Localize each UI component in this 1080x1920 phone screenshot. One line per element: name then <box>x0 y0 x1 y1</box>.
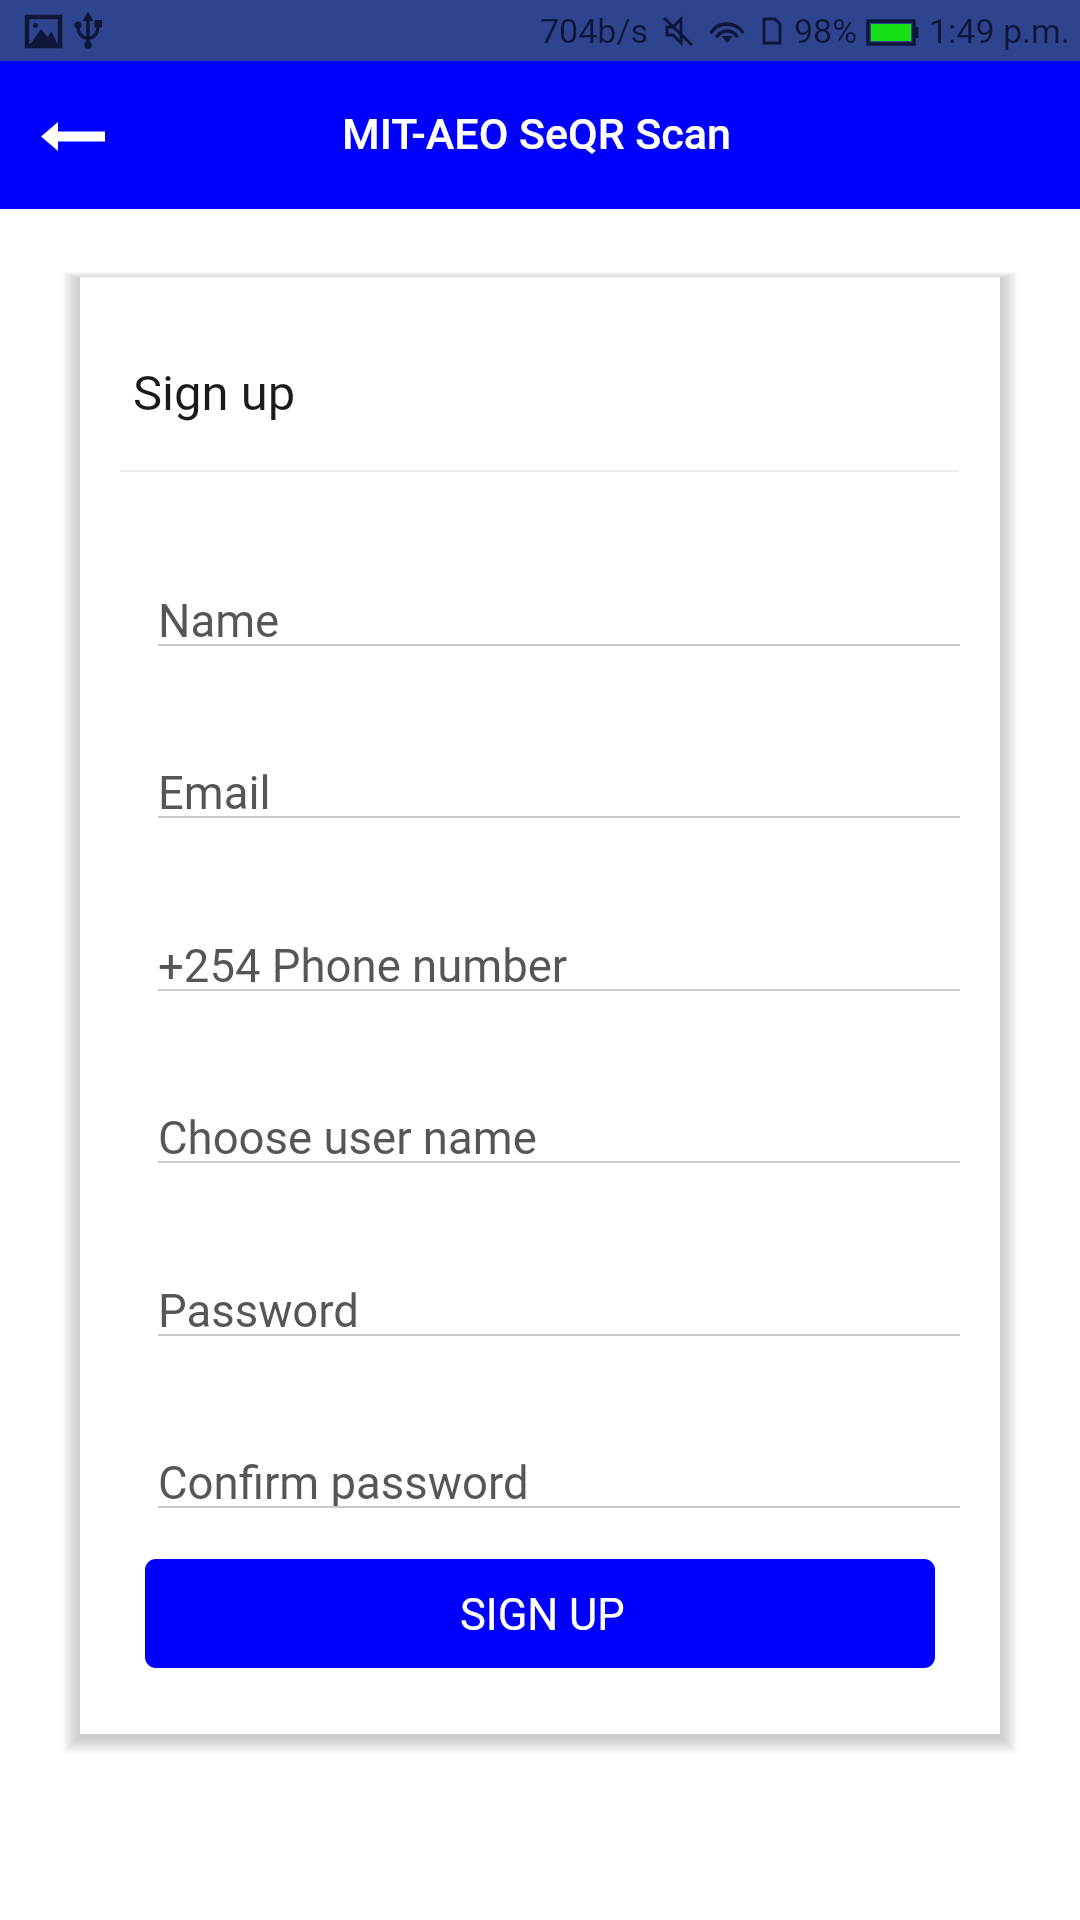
button[interactable]: Email <box>158 730 960 818</box>
staticText: 704b/s <box>540 11 648 51</box>
button[interactable]: Choose user name <box>158 1075 960 1163</box>
staticText: 98% <box>794 11 858 51</box>
staticText: Sign up <box>133 365 296 422</box>
staticText: Name <box>158 595 280 648</box>
button[interactable]: Password <box>158 1248 960 1336</box>
staticText: Email <box>158 767 271 820</box>
button[interactable]: Confirm password <box>158 1420 960 1508</box>
button[interactable]: +254 Phone number <box>158 903 960 991</box>
button[interactable]: Name <box>158 558 960 646</box>
staticText: Choose user name <box>158 1112 537 1165</box>
staticText: 1:49 p.m. <box>929 11 1070 51</box>
staticText: +254 Phone number <box>158 940 568 993</box>
staticText: Password <box>158 1285 359 1338</box>
staticText: MIT-AEO SeQR Scan <box>342 109 732 159</box>
staticText: SIGN UP <box>460 1590 625 1641</box>
staticText: Confirm password <box>158 1457 529 1510</box>
button[interactable]: Back <box>20 85 120 185</box>
button[interactable]: SIGN UP <box>145 1559 935 1668</box>
